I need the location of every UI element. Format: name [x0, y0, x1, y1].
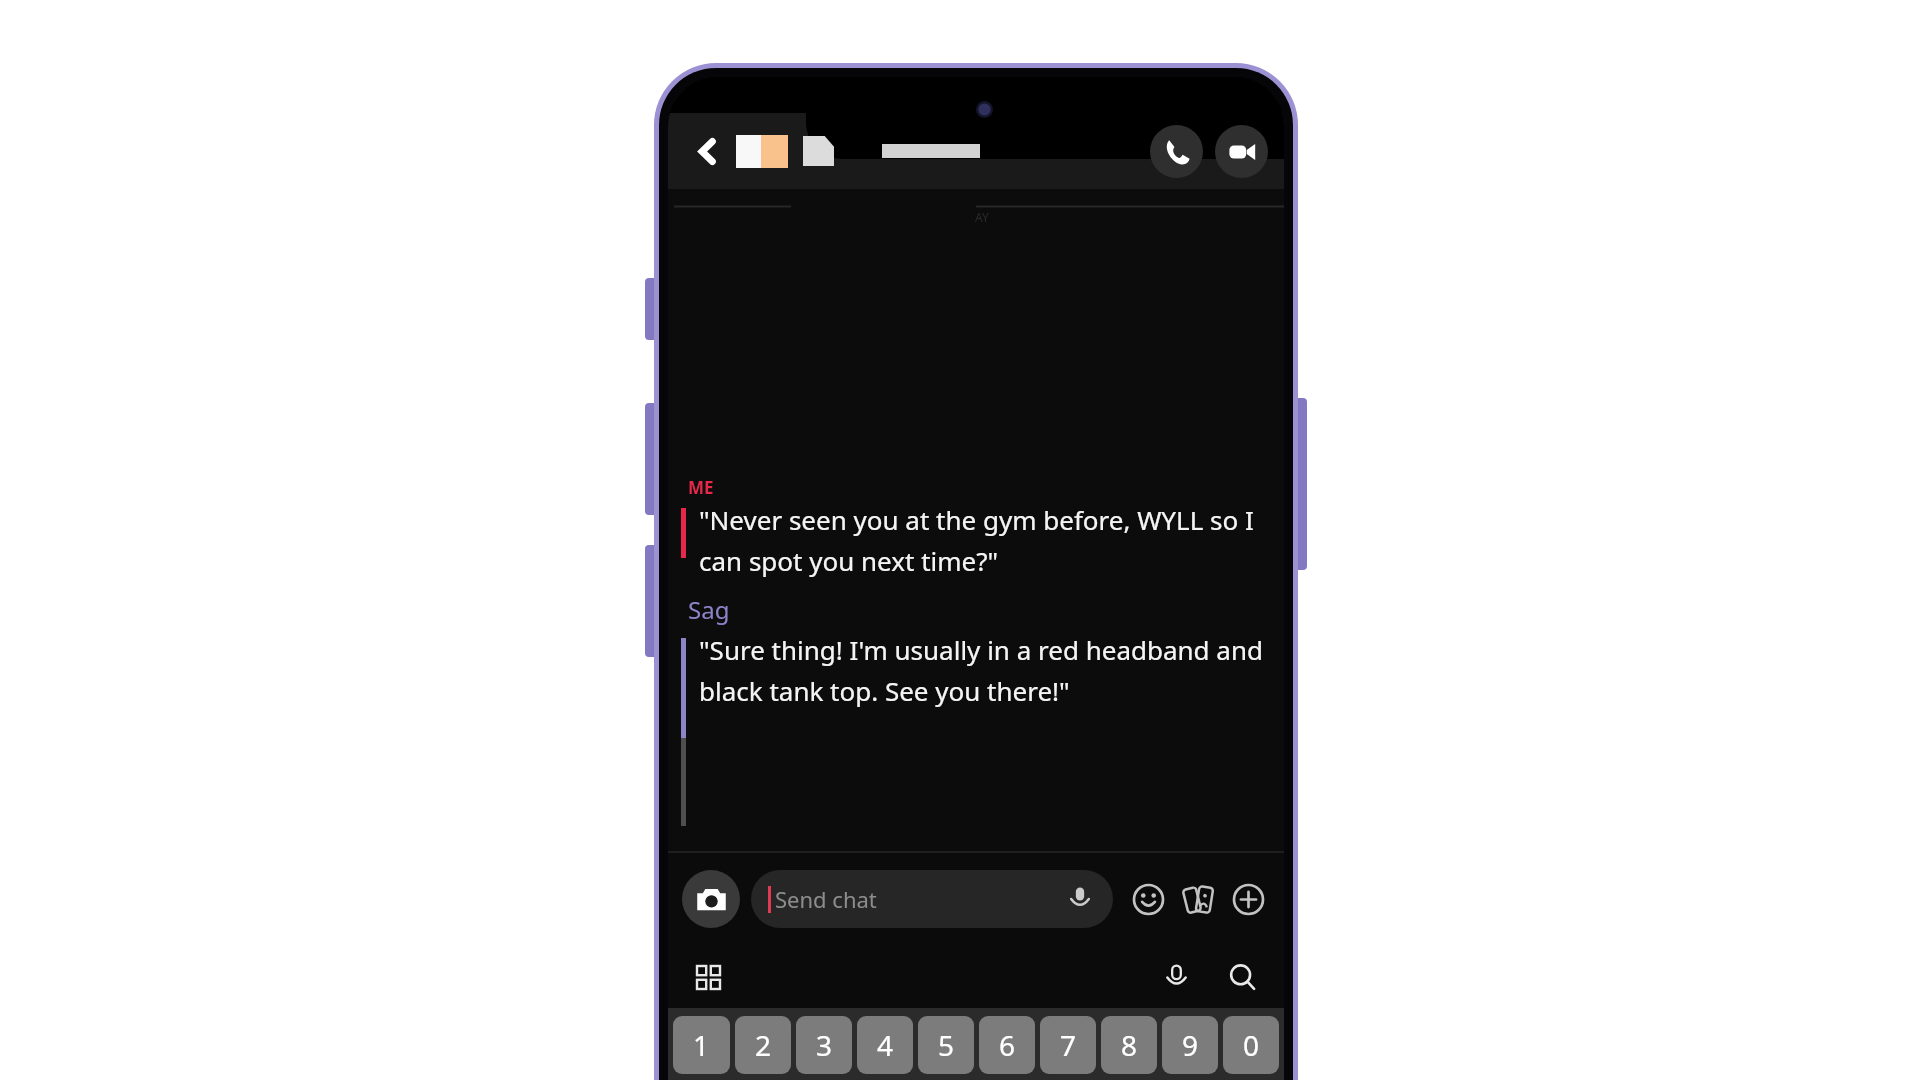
button[interactable]: 1: [673, 1016, 730, 1074]
staticText: ME: [688, 476, 714, 499]
staticText: "Sure thing! I'm usually in a red headba…: [699, 632, 1268, 709]
staticText: Sag: [688, 593, 730, 626]
staticText: 4: [877, 1026, 894, 1064]
button[interactable]: 7: [1040, 1016, 1096, 1074]
button[interactable]: Add: [1226, 877, 1270, 921]
staticText: 6: [999, 1026, 1016, 1064]
staticText: AY: [975, 209, 989, 225]
button[interactable]: Send chat: [751, 870, 1113, 928]
staticText: 1: [693, 1026, 710, 1064]
staticText: 8: [1121, 1026, 1138, 1064]
button[interactable]: Voice message: [1064, 883, 1096, 915]
button[interactable]: Stickers: [1126, 877, 1170, 921]
button[interactable]: Voice input: [1154, 955, 1198, 999]
staticText: 0: [1243, 1026, 1260, 1064]
button[interactable]: Profile: [736, 135, 788, 168]
button[interactable]: Video call: [1215, 125, 1268, 178]
button[interactable]: 9: [1162, 1016, 1218, 1074]
button[interactable]: Cameos: [1176, 877, 1220, 921]
button[interactable]: 4: [857, 1016, 913, 1074]
button[interactable]: 0: [1223, 1016, 1279, 1074]
staticText: 5: [938, 1026, 955, 1064]
staticText: 9: [1182, 1026, 1199, 1064]
button[interactable]: Search: [1220, 955, 1264, 999]
button[interactable]: 2: [735, 1016, 791, 1074]
button[interactable]: "Sure thing! I'm usually in a red headba…: [668, 632, 1284, 738]
button[interactable]: 3: [796, 1016, 852, 1074]
staticText: 3: [816, 1026, 833, 1064]
button[interactable]: Voice call: [1150, 125, 1203, 178]
button[interactable]: 6: [979, 1016, 1035, 1074]
staticText: "Never seen you at the gym before, WYLL …: [699, 502, 1268, 579]
button[interactable]: "Never seen you at the gym before, WYLL …: [668, 502, 1284, 579]
staticText: Send chat: [775, 884, 877, 914]
button[interactable]: Camera: [682, 870, 740, 928]
button[interactable]: 5: [918, 1016, 974, 1074]
button[interactable]: Back: [684, 128, 730, 174]
staticText: 2: [755, 1026, 772, 1064]
button[interactable]: 8: [1101, 1016, 1157, 1074]
button[interactable]: Apps: [688, 957, 728, 997]
staticText: 7: [1060, 1026, 1077, 1064]
